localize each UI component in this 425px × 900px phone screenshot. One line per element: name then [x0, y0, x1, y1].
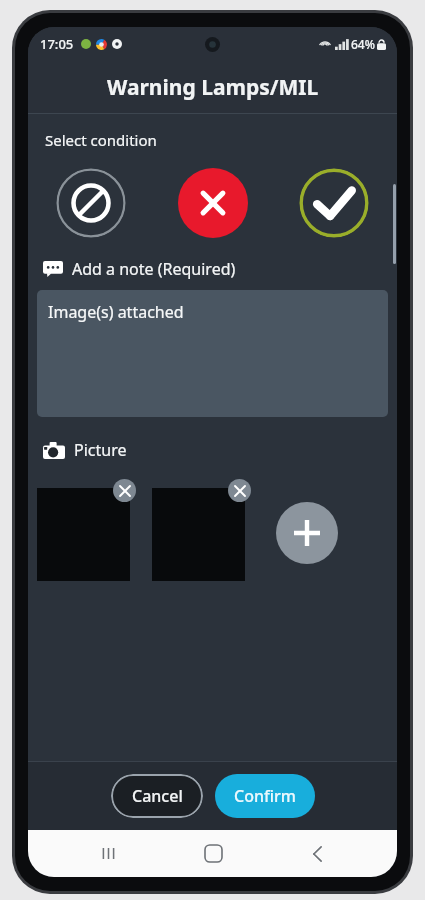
staticText: Add a note (Required) [72, 258, 236, 280]
button[interactable]: Recent apps [84, 830, 132, 877]
button[interactable]: Confirm [215, 774, 315, 818]
staticText: 17:05 [40, 35, 74, 53]
button[interactable]: Attached photo [152, 488, 245, 581]
button[interactable]: Home [189, 830, 237, 877]
button[interactable]: Back [293, 830, 341, 877]
button[interactable]: Remove photo [113, 479, 136, 502]
staticText: Confirm [234, 785, 296, 807]
button[interactable]: Image(s) attached [37, 290, 388, 417]
staticText: Warning Lamps/MIL [107, 73, 319, 102]
button[interactable]: Add picture [276, 502, 338, 564]
button[interactable]: Not applicable [56, 168, 126, 238]
staticText: Picture [74, 439, 127, 461]
staticText: 64% [351, 36, 375, 52]
staticText: Cancel [132, 785, 183, 807]
button[interactable]: Remove photo [228, 479, 251, 502]
button[interactable]: OK [299, 168, 369, 238]
staticText: Image(s) attached [48, 301, 184, 323]
staticText: Select condition [45, 130, 157, 150]
button[interactable]: Attached photo [37, 488, 130, 581]
button[interactable]: Fault [178, 168, 248, 238]
button[interactable]: Cancel [111, 774, 203, 818]
